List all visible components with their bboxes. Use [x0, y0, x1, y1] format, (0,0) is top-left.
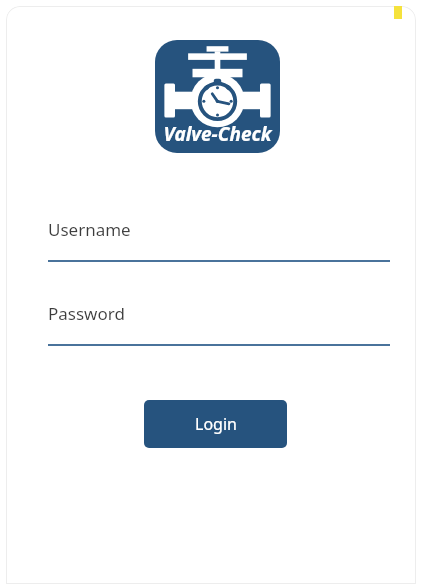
other: Valve-Check logo [155, 40, 280, 153]
button[interactable]: Username [48, 212, 390, 262]
staticText: Login [195, 413, 237, 435]
button[interactable]: Password [48, 296, 390, 346]
button[interactable]: Login [144, 400, 287, 448]
staticText: Valve-Check [155, 121, 280, 147]
staticText: Password [48, 302, 125, 325]
staticText: Username [48, 218, 131, 241]
